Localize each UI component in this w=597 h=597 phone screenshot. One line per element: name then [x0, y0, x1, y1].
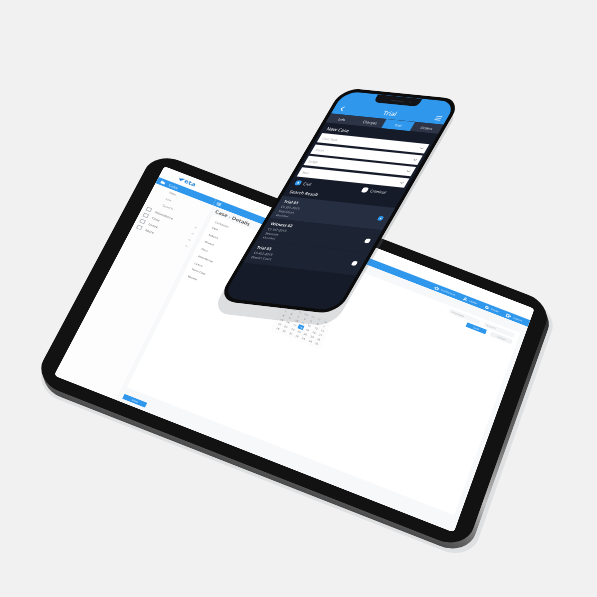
button[interactable]: 31 [287, 330, 295, 337]
button[interactable]: Date [240, 251, 302, 280]
staticText: Trial 01 [283, 199, 300, 205]
button[interactable]: 33 [300, 335, 307, 341]
staticText: 33 [301, 337, 306, 341]
button[interactable]: Orders [410, 122, 443, 134]
staticText: 19 [305, 328, 310, 332]
staticText: 16 [286, 320, 290, 324]
button[interactable]: 3 [295, 313, 302, 319]
button[interactable]: 23 [282, 323, 290, 329]
staticText: Sa [324, 320, 328, 324]
button[interactable]: Detail [480, 302, 504, 317]
button[interactable]: Logout [501, 310, 528, 326]
button[interactable]: Leave [135, 216, 196, 245]
button[interactable]: Branch [204, 240, 238, 255]
button[interactable]: 22 [276, 321, 283, 327]
button[interactable]: 11 [299, 320, 306, 326]
staticText: Charges [362, 119, 378, 125]
staticText: Court [315, 148, 326, 152]
staticText: District Court [250, 255, 273, 261]
button[interactable]: Trial 03 [243, 240, 369, 275]
button[interactable]: Dashboard [429, 282, 460, 300]
button[interactable]: 1 [282, 308, 289, 314]
button[interactable]: 13 [312, 325, 320, 331]
button[interactable]: 30 [280, 327, 288, 334]
button[interactable]: Year [297, 167, 409, 188]
button[interactable]: Attendance [197, 255, 231, 270]
button[interactable]: 20 [310, 329, 318, 335]
staticText: Leave [148, 222, 159, 229]
button[interactable]: 15 [278, 316, 285, 323]
button[interactable]: 25 [295, 328, 303, 335]
button[interactable]: Judge [303, 156, 416, 176]
button[interactable]: Attendance [141, 204, 202, 232]
button[interactable]: Criminal [360, 187, 388, 195]
staticText: 22 [277, 322, 282, 326]
staticText: Leave [469, 299, 477, 305]
button[interactable]: Menu [213, 199, 225, 209]
button[interactable]: 16 [284, 319, 291, 325]
button[interactable]: 26 [301, 331, 309, 337]
button[interactable]: 17 [291, 321, 298, 328]
button[interactable]: More [132, 222, 193, 251]
staticText: Trial [393, 123, 403, 128]
button[interactable]: 35 [313, 340, 320, 347]
button[interactable]: Court [310, 144, 423, 165]
button[interactable]: 27 [308, 333, 316, 340]
button[interactable]: 14 [318, 327, 326, 334]
button[interactable]: Floor [201, 247, 234, 262]
button[interactable]: 4 [301, 315, 308, 322]
button[interactable]: Save [122, 394, 147, 408]
button[interactable]: 32 [293, 332, 301, 339]
button[interactable]: Info [325, 113, 359, 125]
button[interactable]: Save [465, 322, 487, 334]
staticText: Branch [204, 240, 215, 247]
button[interactable]: 8 [280, 312, 287, 319]
button[interactable]: 2 [288, 310, 295, 317]
button[interactable]: 21 [317, 331, 324, 338]
button[interactable]: 10 [293, 317, 300, 324]
button[interactable]: New [152, 183, 213, 212]
button[interactable]: 28 [315, 336, 322, 342]
button[interactable]: Case [212, 226, 244, 241]
button[interactable]: Case Type [317, 133, 429, 153]
button[interactable]: Time [138, 210, 199, 238]
button[interactable]: Team Chat [191, 268, 224, 283]
button[interactable]: 19 [303, 326, 311, 333]
staticText: 14 [320, 329, 325, 333]
button[interactable]: 18 [297, 324, 305, 330]
button[interactable]: Back [335, 103, 350, 114]
button[interactable]: Employee [448, 308, 481, 325]
button[interactable]: Trial [381, 119, 415, 131]
button[interactable]: 34 [307, 338, 314, 344]
staticText: List [165, 197, 173, 203]
button[interactable]: Branch [483, 322, 515, 338]
staticText: Mo [291, 307, 297, 312]
staticText: Team Chat [191, 268, 206, 275]
button[interactable]: Cancel [489, 331, 513, 344]
staticText: eta [183, 177, 198, 188]
button[interactable]: Civil [294, 180, 313, 187]
button[interactable]: 7 [320, 323, 328, 329]
button[interactable]: 24 [289, 326, 296, 332]
button[interactable]: Witness 02 [256, 218, 382, 253]
button[interactable]: Menu [430, 113, 446, 123]
staticText: New [168, 191, 177, 197]
staticText: 30 [282, 329, 286, 333]
button[interactable]: Case [155, 177, 216, 205]
staticText: 35 [314, 342, 319, 346]
button[interactable]: Review [187, 275, 221, 290]
button[interactable]: Charges [353, 116, 387, 128]
staticText: Case [212, 226, 219, 231]
button[interactable]: 9 [286, 315, 293, 321]
staticText: 21 [318, 333, 323, 337]
button[interactable]: List [149, 190, 209, 218]
button[interactable]: 12 [305, 322, 313, 328]
button[interactable]: 6 [314, 320, 321, 327]
button[interactable]: Search [145, 196, 206, 225]
button[interactable]: Trial 01 [269, 196, 395, 230]
button[interactable]: 29 [274, 325, 281, 331]
staticText: 28 [316, 337, 321, 341]
button[interactable]: Subject [208, 233, 241, 248]
button[interactable]: 5 [307, 318, 315, 324]
button[interactable]: Leave [458, 293, 482, 308]
